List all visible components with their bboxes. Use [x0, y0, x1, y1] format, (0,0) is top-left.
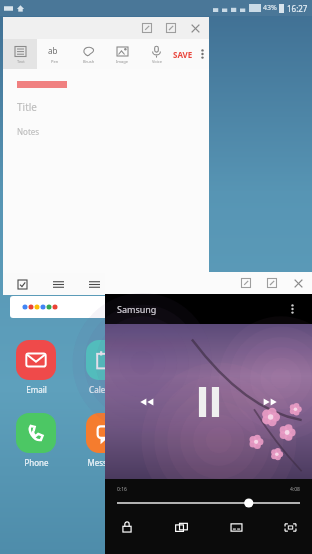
button[interactable]: Email — [8, 340, 64, 395]
staticText: abc — [48, 45, 61, 58]
staticText: Brush — [83, 59, 95, 64]
staticText: Phone — [24, 457, 49, 468]
staticText: Samsung — [117, 303, 157, 315]
staticText: 0:16 — [117, 486, 127, 493]
button[interactable]: Rewind — [134, 389, 160, 415]
button[interactable]: Checklist — [13, 275, 31, 293]
button[interactable]: Google search — [10, 296, 302, 318]
button[interactable]: Image — [105, 39, 139, 69]
staticText: Image — [116, 59, 129, 64]
button[interactable]: Gallery — [148, 340, 204, 395]
button[interactable]: Maximize — [163, 20, 179, 36]
button[interactable]: Brush — [71, 39, 105, 69]
button[interactable]: Text — [3, 39, 37, 69]
button[interactable]: Bullet list — [49, 275, 67, 293]
button[interactable]: Pause — [189, 382, 229, 422]
button[interactable]: Phone — [8, 413, 64, 468]
staticText: Email — [26, 384, 47, 395]
staticText: 16:27 — [287, 3, 308, 14]
button[interactable]: Fast forward — [257, 389, 283, 415]
staticText: 4:08 — [290, 486, 300, 493]
button[interactable]: Minimize — [139, 20, 155, 36]
staticText: 43% — [263, 3, 277, 13]
button[interactable]: Calendar — [78, 340, 134, 395]
staticText: Voice — [152, 59, 162, 64]
button[interactable]: Seek bar — [117, 497, 300, 509]
button[interactable]: Numbered list — [85, 275, 103, 293]
button[interactable]: Close — [187, 20, 203, 36]
button[interactable]: Close video — [290, 275, 306, 291]
button[interactable]: Maximize video — [264, 275, 280, 291]
button[interactable]: SAVE — [173, 49, 193, 60]
button[interactable]: Popup player — [171, 517, 191, 537]
staticText: Notes — [17, 126, 40, 137]
button[interactable]: Subtitles — [226, 517, 246, 537]
staticText: Pen — [51, 59, 59, 64]
staticText: Text — [17, 59, 25, 64]
button[interactable]: Minimize video — [238, 275, 254, 291]
button[interactable]: Full screen — [280, 517, 300, 537]
button[interactable]: Lock — [117, 517, 137, 537]
staticText: Calendar — [89, 384, 123, 395]
button[interactable]: Messages — [78, 413, 134, 468]
staticText: Messages — [87, 457, 125, 468]
staticText: Title — [17, 100, 37, 114]
button[interactable]: Voice — [139, 39, 173, 69]
button[interactable]: More options — [284, 301, 300, 317]
button[interactable]: abc — [37, 39, 71, 69]
staticText: SAVE — [173, 49, 193, 60]
button[interactable]: More options — [195, 39, 209, 69]
